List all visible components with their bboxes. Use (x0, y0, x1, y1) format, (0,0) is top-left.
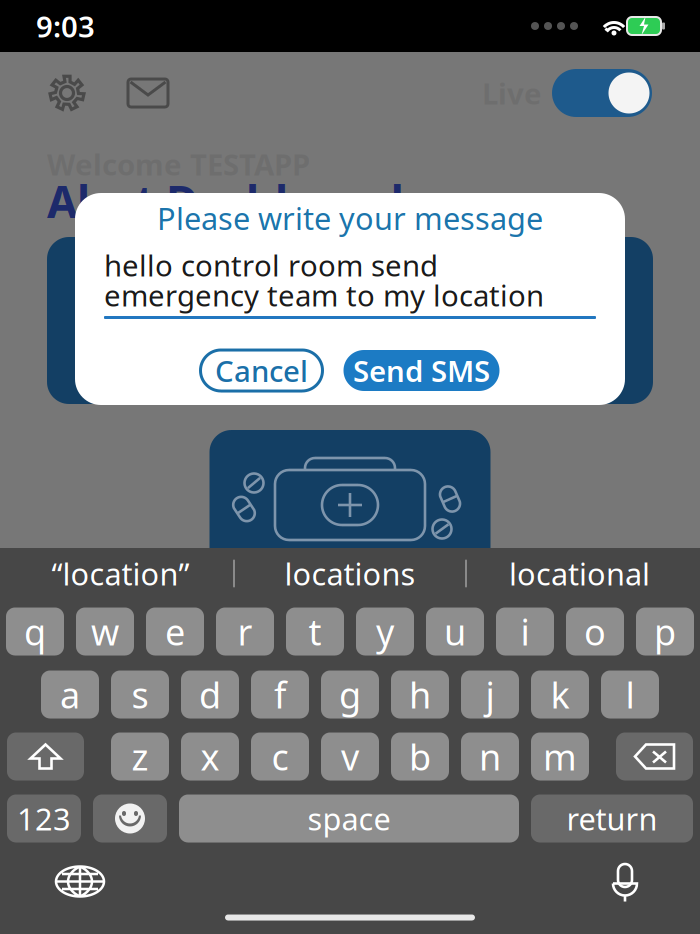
button[interactable]: t (286, 607, 344, 655)
staticText: r (237, 608, 252, 655)
staticText: return (566, 798, 657, 839)
button[interactable]: Shift (7, 732, 84, 780)
staticText: Welcome TESTAPP (47, 144, 310, 183)
staticText: locational (509, 553, 650, 594)
button[interactable]: Live (482, 69, 652, 117)
button[interactable]: f (251, 670, 309, 718)
staticText: k (550, 671, 569, 718)
staticText: Live (482, 73, 542, 112)
staticText: Send SMS (353, 351, 490, 390)
button[interactable]: y (356, 607, 414, 655)
button[interactable]: locational (467, 550, 692, 596)
button[interactable]: a (41, 670, 99, 718)
staticText: Cancel (215, 351, 308, 390)
staticText: n (479, 733, 501, 780)
staticText: l (625, 671, 634, 718)
button[interactable]: b (391, 732, 449, 780)
staticText: 123 (17, 798, 71, 839)
button[interactable]: i (496, 607, 554, 655)
button[interactable]: s (111, 670, 169, 718)
staticText: e (165, 608, 185, 655)
button[interactable]: g (321, 670, 379, 718)
staticText: space (307, 798, 390, 839)
staticText: i (520, 608, 529, 655)
staticText: c (271, 733, 288, 780)
staticText: emergency team to my location (104, 275, 544, 314)
button[interactable]: r (216, 607, 274, 655)
button[interactable]: q (6, 607, 64, 655)
staticText: t (308, 608, 321, 655)
button[interactable]: Delete (616, 732, 693, 780)
button[interactable]: u (426, 607, 484, 655)
button[interactable]: locations (235, 550, 465, 596)
staticText: j (485, 671, 494, 718)
button[interactable]: Settings (48, 74, 86, 112)
staticText: q (24, 608, 46, 655)
staticText: p (654, 608, 676, 655)
staticText: Alert Dashboard (47, 172, 404, 230)
button[interactable]: Medical assistance (209, 430, 490, 580)
staticText: 9:03 (36, 6, 95, 45)
button[interactable]: e (146, 607, 204, 655)
button[interactable]: z (111, 732, 169, 780)
staticText: h (409, 671, 431, 718)
staticText: x (200, 733, 219, 780)
button[interactable]: n (461, 732, 519, 780)
button[interactable]: Cancel (200, 350, 322, 391)
button[interactable]: k (531, 670, 589, 718)
staticText: Please write your message (157, 198, 543, 238)
staticText: “location” (51, 553, 189, 594)
button[interactable]: Change keyboard (55, 856, 105, 906)
button[interactable]: m (531, 732, 589, 780)
button[interactable]: j (461, 670, 519, 718)
button[interactable]: p (636, 607, 694, 655)
staticText: w (91, 608, 119, 655)
staticText: locations (284, 553, 415, 594)
button[interactable]: l (601, 670, 659, 718)
button[interactable]: Send SMS (343, 350, 499, 391)
button[interactable]: x (181, 732, 239, 780)
button[interactable]: w (76, 607, 134, 655)
staticText: y (376, 608, 394, 655)
button[interactable]: v (321, 732, 379, 780)
staticText: f (274, 671, 286, 718)
button[interactable]: d (181, 670, 239, 718)
button[interactable]: h (391, 670, 449, 718)
staticText: g (339, 671, 361, 718)
staticText: a (60, 671, 80, 718)
staticText: v (341, 733, 359, 780)
staticText: d (199, 671, 221, 718)
staticText: hello control room send (104, 245, 438, 284)
button[interactable]: Alert card one (47, 237, 331, 404)
staticText: z (131, 733, 148, 780)
staticText: s (131, 671, 148, 718)
button[interactable]: Emoji (93, 794, 167, 842)
button[interactable]: 123 (7, 794, 81, 842)
staticText: o (584, 608, 606, 655)
staticText: u (444, 608, 466, 655)
staticText: b (409, 733, 431, 780)
button[interactable]: o (566, 607, 624, 655)
button[interactable]: return (531, 794, 693, 842)
button[interactable]: “location” (8, 550, 233, 596)
button[interactable]: c (251, 732, 309, 780)
staticText: m (543, 733, 577, 780)
button[interactable]: Messages (126, 77, 170, 109)
button[interactable]: space (179, 794, 519, 842)
button[interactable]: Dictate (605, 856, 645, 906)
button[interactable]: Alert card two (369, 237, 653, 404)
